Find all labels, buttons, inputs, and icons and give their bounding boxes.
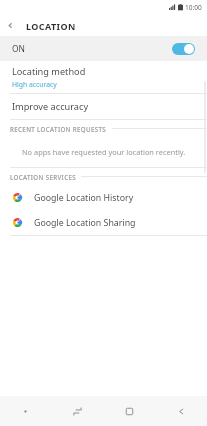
- staticText: No apps have requested your location rec…: [22, 147, 186, 157]
- staticText: High accuracy: [12, 80, 57, 89]
- button[interactable]: ON: [0, 36, 207, 61]
- staticText: Google Location History: [34, 192, 134, 204]
- staticText: 10:00: [185, 3, 202, 12]
- button[interactable]: Improve accuracy: [0, 94, 207, 119]
- button[interactable]: Google Location Sharing: [0, 210, 207, 235]
- button[interactable]: Locating method: [0, 61, 207, 93]
- staticText: Locating method: [12, 65, 86, 78]
- button[interactable]: Google Location History: [0, 185, 207, 210]
- button[interactable]: Keyboard switcher: [0, 396, 51, 426]
- staticText: Google Location Sharing: [34, 217, 136, 229]
- staticText: Improve accuracy: [12, 100, 89, 113]
- staticText: RECENT LOCATION REQUESTS: [10, 125, 107, 133]
- staticText: ON: [12, 43, 25, 54]
- button[interactable]: Navigate up: [0, 15, 21, 36]
- button[interactable]: Home: [103, 396, 155, 426]
- button[interactable]: Back: [155, 396, 207, 426]
- staticText: LOCATION: [26, 20, 76, 32]
- staticText: LOCATION SERVICES: [10, 173, 76, 181]
- button[interactable]: Recent apps: [51, 396, 103, 426]
